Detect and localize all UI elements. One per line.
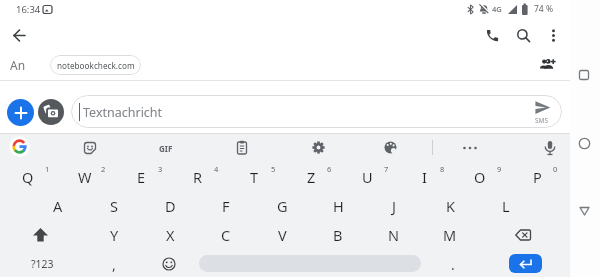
staticText: L bbox=[502, 196, 510, 216]
staticText: D bbox=[165, 196, 176, 216]
staticText: SMS bbox=[535, 116, 549, 125]
button[interactable] bbox=[150, 221, 190, 249]
staticText: , bbox=[112, 255, 116, 274]
staticText: T bbox=[250, 167, 259, 187]
button[interactable] bbox=[16, 251, 64, 277]
button[interactable] bbox=[383, 140, 398, 155]
button[interactable] bbox=[234, 163, 274, 191]
staticText: 4G bbox=[492, 4, 502, 14]
button[interactable] bbox=[578, 69, 590, 81]
staticText: 6 bbox=[327, 164, 332, 174]
button[interactable] bbox=[65, 163, 105, 191]
button[interactable] bbox=[206, 221, 246, 249]
button[interactable] bbox=[516, 28, 531, 43]
button[interactable] bbox=[8, 163, 48, 191]
staticText: 74 % bbox=[534, 3, 553, 15]
button[interactable] bbox=[543, 140, 557, 156]
button[interactable] bbox=[509, 254, 542, 273]
button[interactable] bbox=[485, 28, 500, 43]
staticText: S bbox=[110, 196, 118, 216]
staticText: 7 bbox=[384, 164, 389, 174]
staticText: 16:34 bbox=[16, 3, 41, 16]
staticText: Z bbox=[307, 167, 316, 187]
button[interactable] bbox=[150, 192, 190, 220]
staticText: ?123 bbox=[31, 257, 54, 271]
staticText: 2 bbox=[101, 164, 106, 174]
staticText: X bbox=[166, 225, 175, 245]
button[interactable] bbox=[38, 192, 78, 220]
button[interactable] bbox=[235, 140, 249, 155]
button[interactable] bbox=[486, 192, 526, 220]
button[interactable] bbox=[94, 221, 134, 249]
button[interactable] bbox=[578, 137, 591, 150]
staticText: R bbox=[193, 167, 203, 187]
staticText: GIF bbox=[159, 143, 173, 154]
staticText: 4 bbox=[214, 164, 219, 174]
button[interactable] bbox=[291, 163, 331, 191]
staticText: notebookcheck.com bbox=[57, 60, 135, 71]
button[interactable] bbox=[262, 221, 302, 249]
staticText: 5 bbox=[271, 164, 276, 174]
staticText: 1 bbox=[45, 164, 50, 174]
button[interactable] bbox=[13, 29, 26, 42]
button[interactable] bbox=[71, 95, 562, 128]
button[interactable] bbox=[534, 99, 551, 114]
button[interactable] bbox=[347, 163, 387, 191]
button[interactable] bbox=[430, 192, 470, 220]
staticText: O bbox=[474, 167, 486, 187]
button[interactable] bbox=[311, 140, 326, 155]
button[interactable] bbox=[430, 221, 470, 249]
button[interactable] bbox=[318, 221, 358, 249]
button[interactable] bbox=[9, 136, 30, 157]
staticText: W bbox=[78, 167, 92, 187]
staticText: E bbox=[137, 167, 146, 187]
button[interactable] bbox=[517, 163, 557, 191]
button[interactable] bbox=[38, 99, 64, 125]
button[interactable] bbox=[374, 221, 414, 249]
staticText: C bbox=[221, 225, 231, 245]
button[interactable] bbox=[262, 192, 302, 220]
staticText: G bbox=[277, 196, 288, 216]
button[interactable] bbox=[178, 163, 218, 191]
staticText: J bbox=[392, 196, 396, 216]
button[interactable] bbox=[94, 251, 134, 277]
button[interactable] bbox=[433, 251, 473, 277]
button[interactable] bbox=[374, 192, 414, 220]
button[interactable] bbox=[503, 221, 543, 249]
staticText: U bbox=[362, 167, 373, 187]
staticText: V bbox=[278, 225, 287, 245]
staticText: N bbox=[388, 225, 400, 245]
staticText: An bbox=[10, 57, 26, 73]
button[interactable] bbox=[461, 141, 479, 155]
button[interactable] bbox=[121, 163, 161, 191]
staticText: Q bbox=[22, 167, 34, 187]
staticText: . bbox=[451, 255, 455, 274]
button[interactable] bbox=[578, 205, 591, 217]
button[interactable] bbox=[83, 141, 97, 155]
staticText: 8 bbox=[440, 164, 445, 174]
button[interactable]: notebookcheck.com bbox=[50, 55, 141, 75]
staticText: F bbox=[222, 196, 230, 216]
staticText: K bbox=[446, 196, 455, 216]
button[interactable] bbox=[318, 192, 358, 220]
staticText: Textnachricht bbox=[83, 104, 163, 121]
button[interactable] bbox=[20, 221, 60, 249]
button[interactable] bbox=[546, 28, 561, 43]
button[interactable] bbox=[149, 251, 189, 277]
staticText: P bbox=[533, 167, 542, 187]
staticText: B bbox=[333, 225, 343, 245]
button[interactable] bbox=[94, 192, 134, 220]
button[interactable] bbox=[206, 192, 246, 220]
button[interactable] bbox=[404, 163, 444, 191]
button[interactable] bbox=[539, 57, 556, 72]
staticText: I bbox=[422, 167, 427, 187]
button[interactable] bbox=[7, 99, 34, 126]
staticText: 0 bbox=[553, 164, 558, 174]
staticText: A bbox=[53, 196, 63, 216]
staticText: H bbox=[333, 196, 344, 216]
staticText: 9 bbox=[497, 164, 502, 174]
staticText: 3 bbox=[158, 164, 163, 174]
staticText: M bbox=[443, 225, 457, 245]
button[interactable] bbox=[460, 163, 500, 191]
